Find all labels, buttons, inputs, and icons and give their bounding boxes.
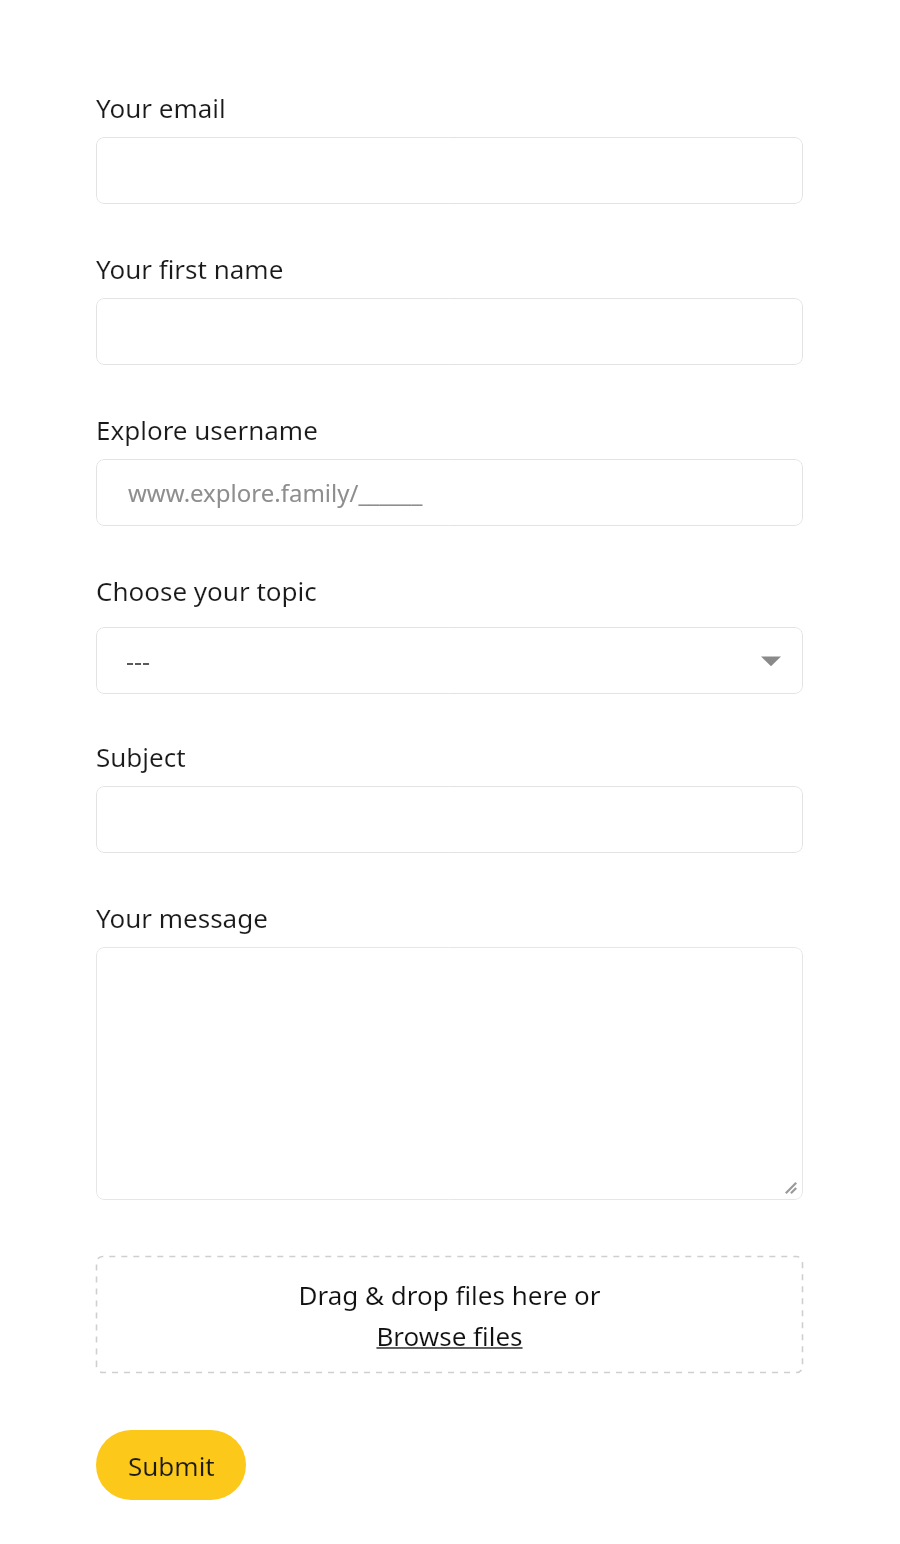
button[interactable]: Your email input	[96, 137, 803, 204]
staticText: Browse files	[376, 1318, 523, 1353]
staticText: www.explore.family/______	[128, 476, 423, 509]
staticText: Choose your topic	[96, 573, 317, 608]
staticText: Drag & drop files here or	[298, 1277, 601, 1312]
button[interactable]: Drag and drop files area	[96, 1256, 803, 1373]
button[interactable]: Subject input	[96, 786, 803, 853]
staticText: Submit	[128, 1448, 215, 1483]
button[interactable]: Choose your topic dropdown	[96, 627, 803, 694]
button[interactable]: Your first name input	[96, 298, 803, 365]
button[interactable]: Explore username input	[96, 459, 803, 526]
staticText: Your email	[96, 90, 226, 125]
staticText: Your first name	[96, 251, 284, 286]
staticText: Subject	[96, 739, 186, 774]
staticText: Your message	[96, 900, 268, 935]
button[interactable]: Submit	[96, 1430, 246, 1500]
button[interactable]: Browse files	[376, 1318, 523, 1353]
staticText: Explore username	[96, 412, 318, 447]
staticText: ---	[126, 644, 151, 678]
